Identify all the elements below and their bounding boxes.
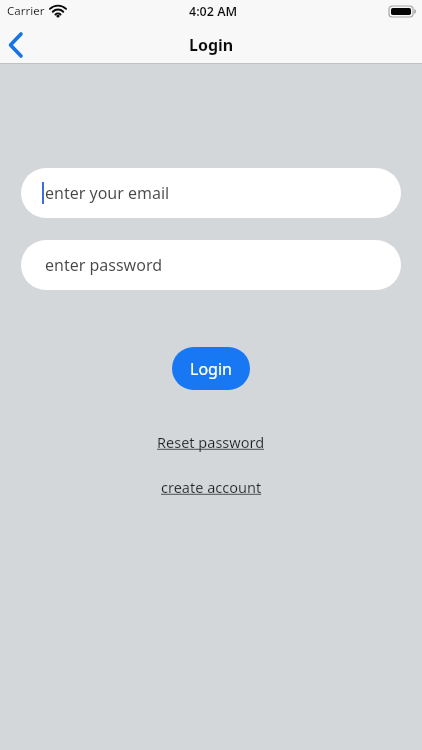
button[interactable]: Reset password	[157, 432, 265, 452]
staticText: enter password	[45, 254, 163, 276]
button[interactable]: create account	[161, 477, 262, 497]
staticText: 4:02 AM	[189, 3, 238, 20]
staticText: Carrier	[7, 3, 45, 19]
staticText: enter your email	[45, 182, 170, 204]
button[interactable]: Login	[172, 347, 250, 390]
staticText: Login	[189, 34, 234, 56]
button[interactable]	[2, 32, 28, 58]
staticText: create account	[161, 477, 262, 497]
staticText: Reset password	[157, 432, 265, 452]
button[interactable]: enter password	[21, 240, 401, 290]
button[interactable]: enter your email	[21, 168, 401, 218]
staticText: Login	[190, 358, 232, 380]
